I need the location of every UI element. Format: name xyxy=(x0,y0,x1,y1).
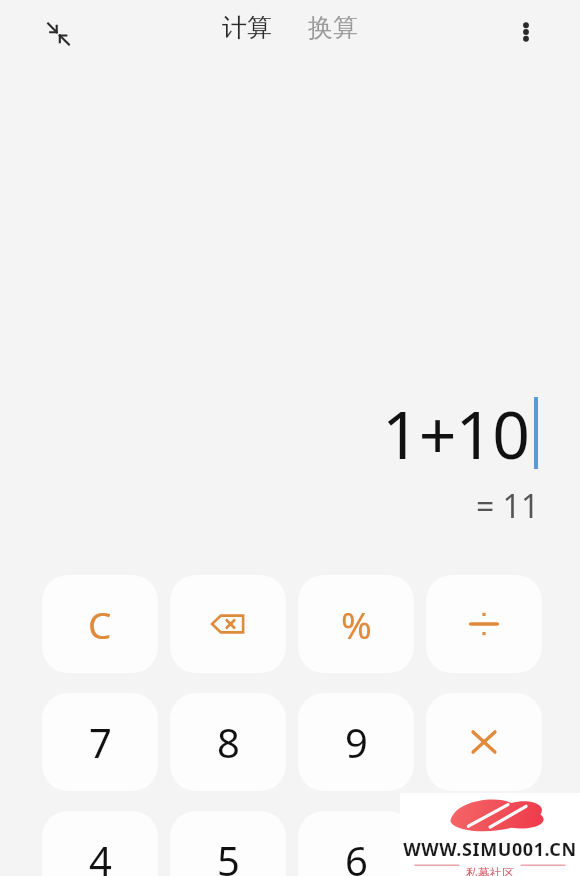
staticText: 7 xyxy=(89,715,112,769)
button[interactable]: 6 xyxy=(298,811,414,876)
staticText: 1+10 xyxy=(382,388,530,478)
staticText: 计算 xyxy=(222,12,272,43)
staticText: 4 xyxy=(89,833,112,876)
button[interactable]: Backspace xyxy=(170,575,286,673)
button[interactable]: 7 xyxy=(42,693,158,791)
staticText: 私募社区 xyxy=(466,865,514,876)
button[interactable]: Collapse xyxy=(32,8,84,60)
staticText: C xyxy=(88,599,112,649)
staticText: 5 xyxy=(217,833,240,876)
button[interactable]: Divide xyxy=(426,575,542,673)
button[interactable]: 4 xyxy=(42,811,158,876)
staticText: = 11 xyxy=(476,484,540,528)
button[interactable]: 9 xyxy=(298,693,414,791)
button[interactable]: % xyxy=(298,575,414,673)
staticText: 9 xyxy=(345,715,368,769)
button[interactable]: 5 xyxy=(170,811,286,876)
staticText: WWW.SIMU001.CN xyxy=(403,837,577,862)
button[interactable]: More options xyxy=(500,6,552,58)
staticText: 8 xyxy=(217,715,240,769)
button[interactable]: 计算 xyxy=(216,10,278,45)
button[interactable]: 8 xyxy=(170,693,286,791)
staticText: 换算 xyxy=(308,12,358,43)
button[interactable]: C xyxy=(42,575,158,673)
button[interactable]: Multiply xyxy=(426,693,542,791)
button[interactable]: 换算 xyxy=(302,10,364,45)
staticText: % xyxy=(341,599,372,649)
staticText: 6 xyxy=(345,833,368,876)
button[interactable]: Minus xyxy=(426,811,542,876)
